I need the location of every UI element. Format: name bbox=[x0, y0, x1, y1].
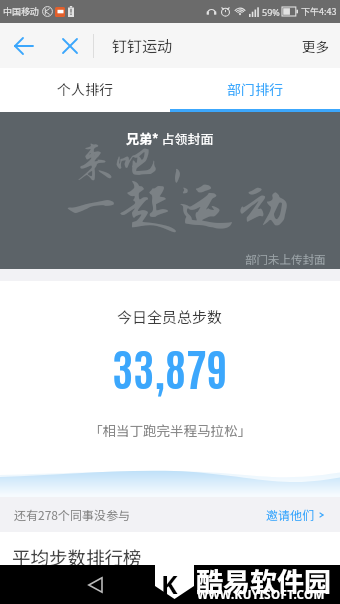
button[interactable]: Close bbox=[56, 32, 84, 60]
other: Back bbox=[88, 577, 102, 593]
staticText: K bbox=[161, 567, 178, 601]
staticText: 部门未上传封面 bbox=[245, 251, 326, 268]
button[interactable]: 部门排行 bbox=[170, 68, 340, 109]
staticText: 中国移动 bbox=[3, 5, 40, 18]
staticText: WWW.KUYISOFT.COM bbox=[197, 587, 325, 603]
staticText: 平均步数排行榜 bbox=[12, 544, 142, 565]
staticText: 个人排行 bbox=[57, 79, 113, 99]
staticText: 更多 bbox=[302, 36, 329, 56]
staticText: 今日全员总步数 bbox=[117, 306, 223, 328]
staticText: 还有278个同事没参与 bbox=[14, 506, 130, 523]
staticText: 「相当丁跑完半程马拉松」 bbox=[89, 420, 251, 440]
button[interactable]: 更多 bbox=[291, 28, 340, 64]
staticText: 部门排行 bbox=[227, 79, 283, 99]
staticText: 酷易软件园 bbox=[196, 561, 331, 600]
staticText: 兄弟* 占领封面 bbox=[126, 129, 214, 148]
staticText: 钉钉运动 bbox=[112, 35, 173, 57]
staticText: 邀请他们 bbox=[266, 506, 315, 523]
staticText: 来吧， bbox=[74, 140, 199, 186]
staticText: 一起运动 bbox=[62, 176, 293, 240]
staticText: 下午4:43 bbox=[301, 5, 337, 18]
staticText: 59% bbox=[262, 6, 280, 18]
staticText: 33,879 bbox=[112, 337, 228, 395]
button[interactable]: 邀请他们 bbox=[266, 506, 326, 523]
button[interactable]: 个人排行 bbox=[0, 68, 170, 109]
button[interactable]: Back bbox=[10, 32, 38, 60]
